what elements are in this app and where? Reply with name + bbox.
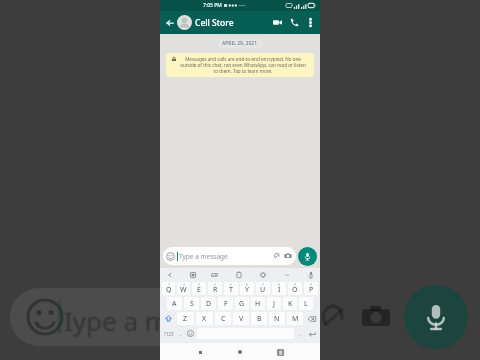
staticText: Iype a me <box>65 303 185 338</box>
button[interactable]: L <box>299 297 313 310</box>
staticText: K <box>288 299 293 309</box>
button[interactable]: ?123 <box>161 326 176 341</box>
button[interactable]: 5 <box>224 282 238 295</box>
button[interactable]: 8 <box>272 282 286 295</box>
staticText: N <box>274 314 280 324</box>
button[interactable]: Recent apps <box>274 346 286 358</box>
staticText: F <box>224 299 228 309</box>
staticText: S <box>190 299 194 309</box>
button[interactable]: V <box>233 312 249 325</box>
button[interactable]: Backspace <box>304 311 319 326</box>
staticText: 9 <box>294 282 296 287</box>
button[interactable]: Home <box>234 346 246 358</box>
staticText: R <box>213 285 218 295</box>
button[interactable]: Period <box>295 326 304 341</box>
staticText: G <box>239 299 245 309</box>
staticText: I <box>278 285 281 295</box>
button[interactable]: 0 <box>304 282 318 295</box>
button[interactable]: 3 <box>192 282 206 295</box>
staticText: GIF <box>211 272 219 278</box>
staticText: 7:05 PM <box>203 2 222 9</box>
staticText: 6 <box>246 282 248 287</box>
staticText: A <box>172 299 177 309</box>
button[interactable]: H <box>251 297 265 310</box>
staticText: 4 <box>214 282 216 287</box>
staticText: H <box>255 299 261 309</box>
button[interactable]: K <box>283 297 297 310</box>
staticText: J <box>273 299 275 309</box>
staticText: D <box>206 299 212 309</box>
staticText: 2 <box>183 282 185 287</box>
button[interactable]: 1 <box>162 282 175 295</box>
staticText: Messages and calls are end-to-end encryp… <box>178 56 308 74</box>
button[interactable]: 7 <box>256 282 270 295</box>
button[interactable]: Z <box>177 312 194 325</box>
staticText: 1 <box>168 282 170 287</box>
staticText: . <box>299 330 301 338</box>
button[interactable]: N <box>269 312 285 325</box>
button[interactable]: Enter <box>304 326 319 341</box>
button[interactable]: Voice message <box>404 285 468 349</box>
staticText: P <box>309 285 314 295</box>
button[interactable]: 6 <box>240 282 254 295</box>
staticText: W <box>180 285 187 295</box>
button[interactable]: M <box>287 312 303 325</box>
staticText: 0 <box>310 282 312 287</box>
button[interactable]: More <box>281 269 292 280</box>
button[interactable]: Previous <box>164 269 175 280</box>
button[interactable]: B <box>251 312 267 325</box>
button[interactable]: 9 <box>288 282 302 295</box>
button[interactable]: 4 <box>208 282 222 295</box>
staticText: Z <box>183 314 188 324</box>
staticText: Y <box>245 285 249 295</box>
staticText: U <box>260 285 266 295</box>
button[interactable]: A <box>167 297 182 310</box>
button[interactable]: X <box>196 312 213 325</box>
staticText: Iype a me <box>63 303 183 338</box>
staticText: O <box>292 285 298 295</box>
button[interactable]: Emoji <box>185 328 196 339</box>
staticText: 7 <box>262 282 264 287</box>
staticText: E <box>197 285 201 295</box>
button[interactable]: C <box>215 312 231 325</box>
button[interactable]: Video call <box>269 14 286 31</box>
staticText: 5 <box>230 282 232 287</box>
staticText: Cell Store <box>195 17 234 29</box>
button[interactable]: GIF <box>210 271 220 279</box>
button[interactable]: 2 <box>177 282 190 295</box>
button[interactable]: Profile photo <box>177 15 192 30</box>
staticText: T <box>229 285 233 295</box>
staticText: ?123 <box>164 331 174 337</box>
staticText: , <box>180 330 182 338</box>
staticText: Q <box>166 285 172 295</box>
button[interactable]: Type a message <box>163 247 296 265</box>
button[interactable]: D <box>201 297 216 310</box>
button[interactable]: G <box>235 297 249 310</box>
button[interactable]: Comma <box>176 326 185 341</box>
staticText: Iype a me <box>64 303 184 338</box>
staticText: 8 <box>278 282 280 287</box>
button[interactable]: Record voice message <box>298 247 317 266</box>
staticText: X <box>202 314 207 324</box>
staticText: 3 <box>198 282 200 287</box>
button[interactable]: Keyboard settings <box>257 269 268 280</box>
button[interactable]: S <box>184 297 199 310</box>
staticText: Iype a me <box>64 304 184 339</box>
button[interactable]: Voice call <box>286 14 303 31</box>
button[interactable]: More options <box>303 15 318 30</box>
button[interactable]: Stickers <box>187 269 198 280</box>
button[interactable]: Back <box>194 346 206 358</box>
staticText: APRIL 29, 2021 <box>222 40 258 47</box>
button[interactable]: F <box>218 297 233 310</box>
button[interactable]: Back <box>163 16 176 29</box>
button[interactable]: Shift <box>161 311 176 326</box>
staticText: Iype a me <box>64 302 184 337</box>
button[interactable]: Cell Store <box>195 17 269 29</box>
staticText: V <box>239 314 244 324</box>
button[interactable]: J <box>267 297 281 310</box>
button[interactable]: Messages and calls are end-to-end encryp… <box>166 53 314 77</box>
staticText: C <box>221 314 226 324</box>
button[interactable]: Clipboard <box>233 269 244 280</box>
button[interactable]: Voice input <box>305 269 316 280</box>
